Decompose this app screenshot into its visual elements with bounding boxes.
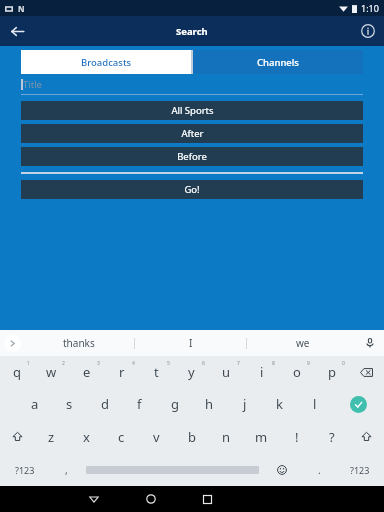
staticText: a xyxy=(31,395,39,413)
button[interactable]: j xyxy=(227,388,262,420)
staticText: After xyxy=(181,127,204,140)
staticText: l xyxy=(313,395,317,413)
button[interactable]: Home xyxy=(122,486,179,512)
button[interactable]: Info xyxy=(352,16,384,46)
staticText: q xyxy=(13,363,21,381)
staticText: Go! xyxy=(184,183,200,196)
staticText: m xyxy=(255,428,268,446)
staticText: . xyxy=(318,463,321,477)
staticText: ?123 xyxy=(15,464,35,476)
button[interactable]: Channels xyxy=(193,50,363,74)
button[interactable]: Backspace xyxy=(349,356,384,388)
staticText: Broadcasts xyxy=(81,56,132,69)
button[interactable]: , xyxy=(49,453,83,486)
staticText: e xyxy=(83,363,91,381)
staticText: 4 xyxy=(132,360,135,367)
button[interactable]: I xyxy=(135,330,246,356)
button[interactable]: k xyxy=(262,388,297,420)
button[interactable]: x xyxy=(69,420,104,453)
button[interactable]: s xyxy=(52,388,87,420)
staticText: h xyxy=(205,395,214,413)
button[interactable]: Emoji xyxy=(261,453,302,486)
button[interactable]: d xyxy=(87,388,122,420)
button[interactable]: i xyxy=(244,356,279,388)
button[interactable]: w xyxy=(34,356,69,388)
button[interactable]: b xyxy=(174,420,209,453)
staticText: 1 xyxy=(27,360,30,367)
button[interactable]: e xyxy=(69,356,104,388)
button[interactable]: Shift xyxy=(0,420,34,453)
staticText: Channels xyxy=(257,56,299,69)
button[interactable]: ?123 xyxy=(0,453,49,486)
button[interactable]: r xyxy=(104,356,139,388)
button[interactable]: l xyxy=(297,388,332,420)
button[interactable]: u xyxy=(209,356,244,388)
staticText: 9 xyxy=(307,360,310,367)
button[interactable]: Before xyxy=(21,147,363,166)
staticText: j xyxy=(243,395,247,413)
button[interactable]: n xyxy=(209,420,244,453)
button[interactable]: q xyxy=(0,356,34,388)
staticText: b xyxy=(188,428,196,446)
staticText: d xyxy=(101,395,109,413)
button[interactable]: Space xyxy=(83,453,261,486)
button[interactable]: . xyxy=(302,453,336,486)
staticText: p xyxy=(328,363,336,381)
button[interactable]: Recent apps xyxy=(179,486,236,512)
staticText: , xyxy=(65,463,68,477)
staticText: i xyxy=(260,363,264,381)
button[interactable]: v xyxy=(139,420,174,453)
staticText: r xyxy=(119,363,125,381)
button[interactable]: thanks xyxy=(24,330,134,356)
button[interactable]: Back xyxy=(65,486,122,512)
staticText: s xyxy=(66,395,73,413)
staticText: f xyxy=(137,395,142,413)
staticText: u xyxy=(222,363,231,381)
button[interactable]: Shift xyxy=(349,420,384,453)
staticText: 0 xyxy=(342,360,345,367)
button[interactable]: Navigate up xyxy=(0,16,34,46)
button[interactable]: p xyxy=(314,356,349,388)
staticText: c xyxy=(118,428,125,446)
button[interactable]: c xyxy=(104,420,139,453)
staticText: thanks xyxy=(63,336,95,350)
staticText: Before xyxy=(177,150,207,163)
staticText: x xyxy=(83,428,90,446)
button[interactable]: y xyxy=(174,356,209,388)
button[interactable]: Voice input xyxy=(361,334,379,352)
button[interactable]: m xyxy=(244,420,279,453)
button[interactable]: we xyxy=(247,330,358,356)
staticText: o xyxy=(293,363,301,381)
button[interactable]: Broadcasts xyxy=(21,50,191,74)
button[interactable]: o xyxy=(279,356,314,388)
staticText: Title xyxy=(23,78,42,91)
staticText: 2 xyxy=(62,360,65,367)
button[interactable]: z xyxy=(34,420,69,453)
staticText: v xyxy=(153,428,160,446)
staticText: 8 xyxy=(272,360,275,367)
button[interactable]: All Sports xyxy=(21,101,363,120)
staticText: I xyxy=(189,336,193,350)
staticText: ? xyxy=(329,428,335,446)
button[interactable]: ?123 xyxy=(336,453,384,486)
staticText: n xyxy=(222,428,231,446)
button[interactable]: Go! xyxy=(21,180,363,199)
button[interactable]: h xyxy=(192,388,227,420)
staticText: k xyxy=(276,395,283,413)
button[interactable]: Enter xyxy=(332,388,384,420)
button[interactable]: After xyxy=(21,124,363,143)
button[interactable]: t xyxy=(139,356,174,388)
staticText: ?123 xyxy=(350,464,370,476)
staticText: N xyxy=(18,3,25,14)
staticText: 3 xyxy=(97,360,100,367)
staticText: All Sports xyxy=(171,104,214,117)
button[interactable]: g xyxy=(157,388,192,420)
staticText: 5 xyxy=(167,360,170,367)
button[interactable]: f xyxy=(122,388,157,420)
staticText: 6 xyxy=(202,360,205,367)
button[interactable]: ? xyxy=(314,420,349,453)
button[interactable]: More suggestions xyxy=(4,335,21,352)
button[interactable]: a xyxy=(17,388,52,420)
button[interactable]: ! xyxy=(279,420,314,453)
staticText: y xyxy=(188,363,195,381)
